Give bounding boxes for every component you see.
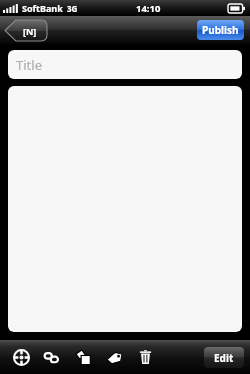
staticText: 14:10 [136, 2, 161, 15]
button[interactable]: Edit [204, 347, 244, 368]
staticText: 3G [67, 3, 78, 14]
button[interactable]: Location [11, 347, 31, 367]
staticText: Edit [214, 351, 234, 365]
button[interactable]: Back [5, 20, 47, 41]
button[interactable]: Publish [197, 20, 244, 40]
button[interactable]: Link [42, 347, 62, 367]
staticText: SoftBank [22, 2, 63, 14]
button[interactable]: Title [8, 50, 242, 79]
staticText: Publish [202, 23, 239, 37]
button[interactable]: Delete [135, 347, 155, 367]
button[interactable]: Tags [104, 347, 124, 367]
staticText: [N] [23, 25, 37, 37]
button[interactable] [8, 86, 242, 332]
staticText: Title [16, 56, 42, 74]
button[interactable]: Photos [73, 347, 93, 367]
